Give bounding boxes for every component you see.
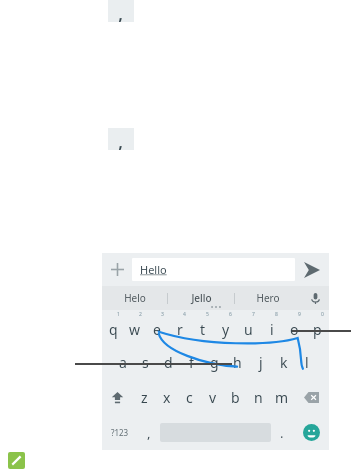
staticText: 0 — [321, 311, 324, 318]
button[interactable]: Jello — [168, 286, 234, 310]
button[interactable]: 7 — [237, 310, 260, 345]
button[interactable]: 2 — [124, 310, 146, 345]
button[interactable]: a — [112, 345, 134, 380]
staticText: 5 — [206, 311, 209, 318]
staticText: w — [129, 320, 141, 339]
staticText: s — [142, 353, 149, 372]
staticText: e — [153, 320, 161, 339]
button[interactable]: v — [201, 380, 224, 415]
staticText: p — [313, 320, 322, 339]
staticText: 2 — [139, 311, 142, 318]
staticText: 3 — [161, 311, 164, 318]
staticText: ?123 — [111, 427, 129, 438]
staticText: y — [222, 320, 230, 339]
staticText: 8 — [275, 311, 278, 318]
button[interactable]: x — [155, 380, 178, 415]
button[interactable]: 5 — [191, 310, 214, 345]
button[interactable]: d — [157, 345, 180, 380]
staticText: u — [244, 320, 253, 339]
button[interactable]: k — [272, 345, 295, 380]
staticText: o — [290, 320, 299, 339]
button[interactable]: Helo — [102, 286, 167, 310]
button[interactable]: 3 — [146, 310, 168, 345]
staticText: t — [200, 320, 206, 339]
staticText: , — [118, 128, 124, 150]
button[interactable]: 0 — [306, 310, 329, 345]
staticText: 9 — [298, 311, 301, 318]
button[interactable]: , — [138, 415, 160, 450]
staticText: Hello — [140, 262, 167, 277]
staticText: g — [210, 353, 219, 372]
button[interactable]: Shift — [102, 380, 133, 415]
button[interactable]: z — [133, 380, 155, 415]
staticText: Jello — [191, 291, 212, 305]
staticText: b — [231, 388, 240, 407]
button[interactable]: m — [270, 380, 293, 415]
button[interactable]: Send — [295, 253, 329, 286]
staticText: a — [119, 353, 127, 372]
staticText: j — [259, 353, 263, 372]
button[interactable]: 1 — [102, 310, 124, 345]
staticText: c — [186, 388, 193, 407]
staticText: m — [275, 388, 289, 407]
staticText: , — [118, 0, 124, 22]
staticText: Helo — [124, 291, 146, 305]
staticText: 1 — [117, 311, 120, 318]
button[interactable]: b — [224, 380, 247, 415]
staticText: 6 — [229, 311, 232, 318]
button[interactable]: Voice input — [301, 286, 329, 310]
button[interactable]: Edit — [8, 452, 25, 469]
staticText: r — [177, 320, 183, 339]
button[interactable]: Backspace — [293, 380, 329, 415]
button[interactable]: . — [271, 415, 293, 450]
button[interactable]: s — [134, 345, 157, 380]
button[interactable]: n — [247, 380, 270, 415]
staticText: d — [164, 353, 173, 372]
button[interactable]: Add attachment — [102, 253, 132, 286]
button[interactable]: g — [203, 345, 226, 380]
staticText: k — [280, 353, 288, 372]
staticText: . — [280, 424, 284, 442]
staticText: v — [209, 388, 217, 407]
staticText: n — [254, 388, 263, 407]
staticText: z — [141, 388, 148, 407]
button[interactable]: 6 — [214, 310, 237, 345]
button[interactable]: j — [249, 345, 272, 380]
button[interactable]: 8 — [260, 310, 283, 345]
button[interactable]: f — [180, 345, 203, 380]
button[interactable]: ?123 — [102, 415, 138, 450]
button[interactable]: Hello — [132, 258, 295, 281]
staticText: , — [147, 424, 151, 442]
staticText: h — [233, 353, 242, 372]
staticText: Hero — [256, 291, 280, 305]
staticText: x — [163, 388, 171, 407]
staticText: 4 — [183, 311, 186, 318]
button[interactable]: Hero — [235, 286, 301, 310]
button[interactable]: Emoji — [293, 415, 329, 450]
staticText: f — [189, 353, 194, 372]
button[interactable]: c — [178, 380, 201, 415]
button[interactable]: h — [226, 345, 249, 380]
staticText: i — [270, 320, 274, 339]
button[interactable]: l — [295, 345, 318, 380]
staticText: 7 — [252, 311, 255, 318]
button[interactable]: 9 — [283, 310, 306, 345]
button[interactable]: 4 — [168, 310, 191, 345]
staticText: l — [305, 353, 309, 372]
staticText: q — [109, 320, 118, 339]
